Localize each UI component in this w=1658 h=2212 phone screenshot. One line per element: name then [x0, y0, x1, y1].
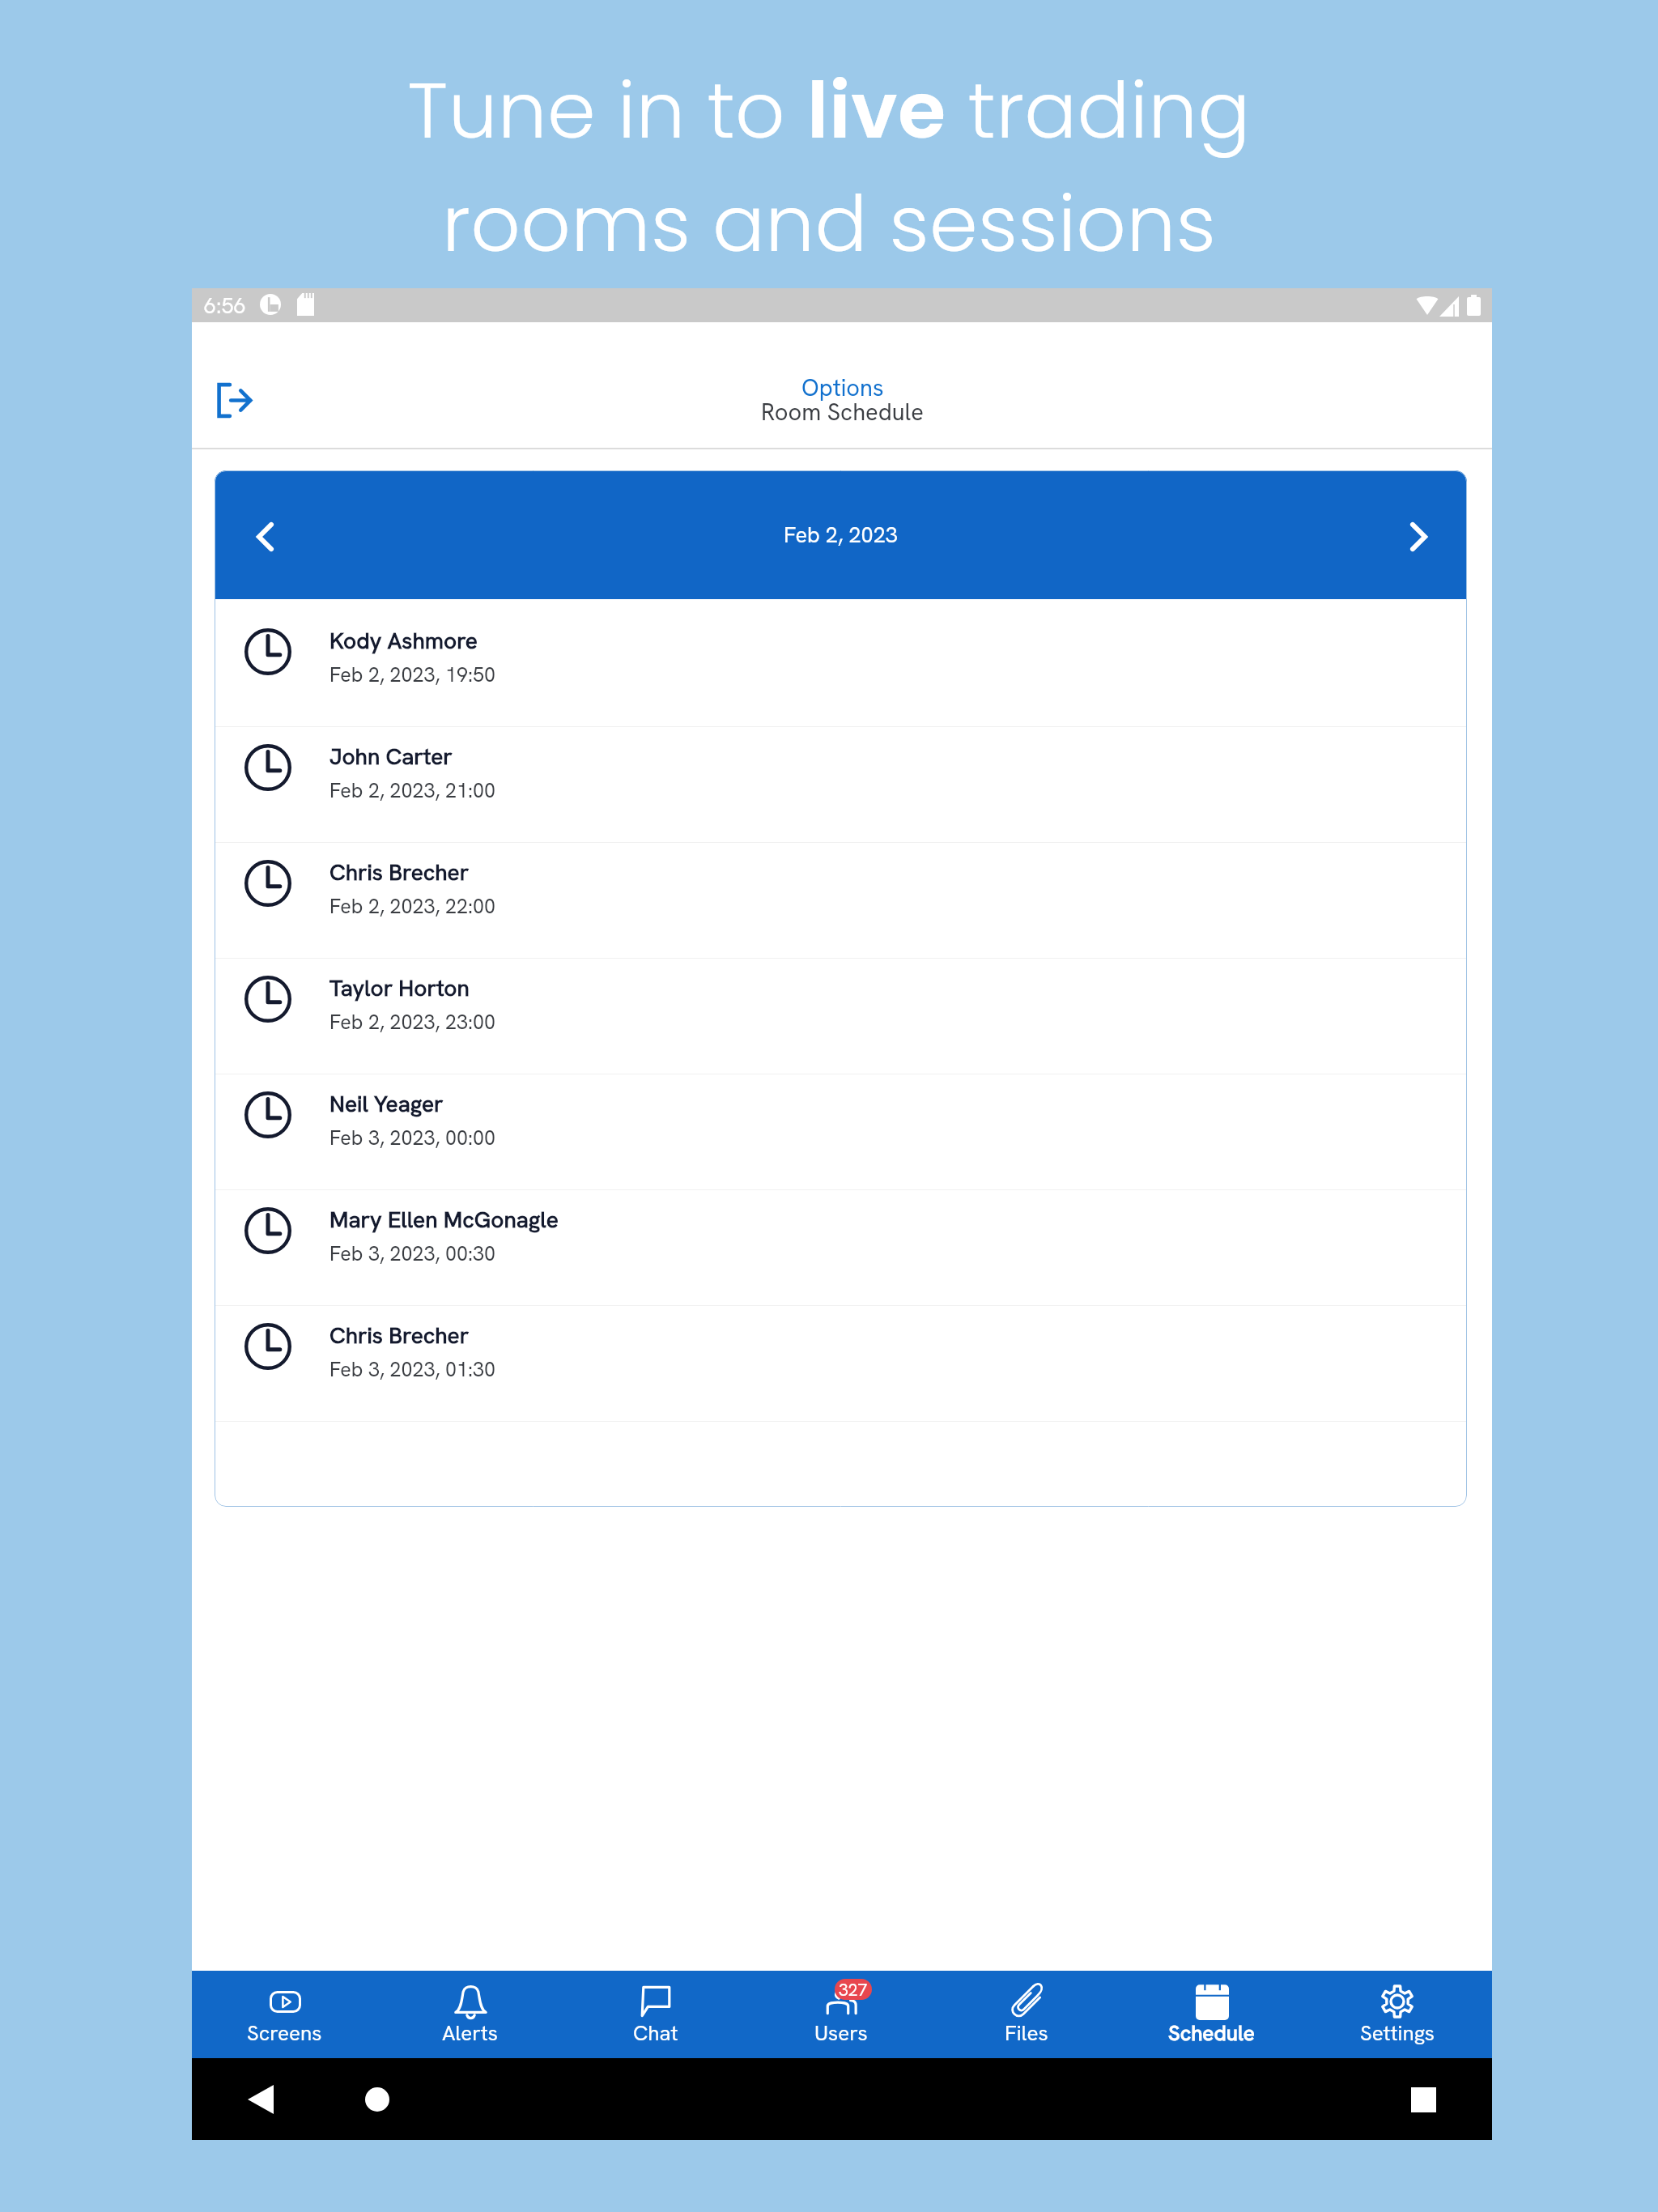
- staticText: Tune in to live trading rooms and sessio…: [407, 56, 1251, 278]
- button[interactable]: Log out: [195, 361, 273, 439]
- button[interactable]: Back: [224, 2063, 297, 2136]
- staticText: Room Schedule: [761, 397, 924, 428]
- staticText: Feb 3, 2023, 00:30: [329, 1240, 496, 1267]
- staticText: John Carter: [329, 742, 453, 771]
- staticText: Feb 3, 2023, 01:30: [329, 1356, 496, 1383]
- staticText: Feb 2, 2023, 21:00: [329, 777, 496, 804]
- staticText: 327: [839, 1979, 868, 2000]
- button[interactable]: Next day: [1370, 470, 1467, 599]
- staticText: Feb 3, 2023, 00:00: [329, 1125, 496, 1151]
- staticText: Settings: [1360, 2019, 1435, 2047]
- button[interactable]: Chat: [563, 1971, 748, 2058]
- button[interactable]: Chris Brecher: [215, 1306, 1467, 1421]
- button[interactable]: Files: [933, 1971, 1119, 2058]
- button[interactable]: Home: [341, 2063, 414, 2136]
- staticText: Kody Ashmore: [329, 626, 478, 655]
- staticText: Feb 2, 2023: [784, 521, 898, 549]
- staticText: Chris Brecher: [329, 857, 470, 887]
- staticText: 6:56: [204, 291, 246, 320]
- button[interactable]: Kody Ashmore: [215, 611, 1467, 726]
- staticText: Neil Yeager: [329, 1089, 444, 1118]
- button[interactable]: Alerts: [377, 1971, 563, 2058]
- button[interactable]: Previous day: [215, 470, 315, 599]
- button[interactable]: Recents: [1387, 2063, 1460, 2136]
- button[interactable]: John Carter: [215, 727, 1467, 842]
- staticText: Screens: [247, 2019, 322, 2047]
- staticText: Schedule: [1168, 2019, 1255, 2047]
- button[interactable]: Chris Brecher: [215, 843, 1467, 958]
- staticText: Feb 2, 2023, 19:50: [329, 661, 496, 688]
- staticText: Files: [1005, 2019, 1048, 2047]
- button[interactable]: Settings: [1304, 1971, 1490, 2058]
- staticText: Options: [801, 372, 884, 403]
- staticText: Chat: [633, 2019, 678, 2047]
- button[interactable]: Taylor Horton: [215, 959, 1467, 1074]
- staticText: Chris Brecher: [329, 1321, 470, 1350]
- staticText: Feb 2, 2023, 23:00: [329, 1009, 496, 1036]
- button[interactable]: Schedule: [1119, 1971, 1304, 2058]
- button[interactable]: Mary Ellen McGonagle: [215, 1190, 1467, 1305]
- staticText: Taylor Horton: [329, 973, 470, 1002]
- staticText: Mary Ellen McGonagle: [329, 1205, 559, 1234]
- staticText: Users: [814, 2019, 868, 2047]
- button[interactable]: Screens: [192, 1971, 377, 2058]
- button[interactable]: Neil Yeager: [215, 1074, 1467, 1189]
- staticText: Feb 2, 2023, 22:00: [329, 893, 496, 920]
- button[interactable]: Users: [748, 1971, 933, 2058]
- staticText: Alerts: [442, 2019, 499, 2047]
